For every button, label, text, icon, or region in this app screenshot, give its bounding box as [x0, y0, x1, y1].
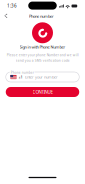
staticText: Sign in with Phone Number — [19, 44, 65, 50]
staticText: Enter your number — [25, 74, 58, 80]
staticText: Phone number — [29, 14, 54, 19]
button[interactable]: CONTINUE — [6, 87, 79, 97]
staticText: +1 — [18, 74, 22, 80]
staticText: CONTINUE — [32, 89, 52, 95]
button[interactable]: Back — [1, 11, 10, 20]
staticText: Phone number — [11, 70, 34, 75]
staticText: Please enter your phone Number and we wi… — [6, 53, 78, 63]
staticText: 1:36 — [7, 3, 17, 9]
